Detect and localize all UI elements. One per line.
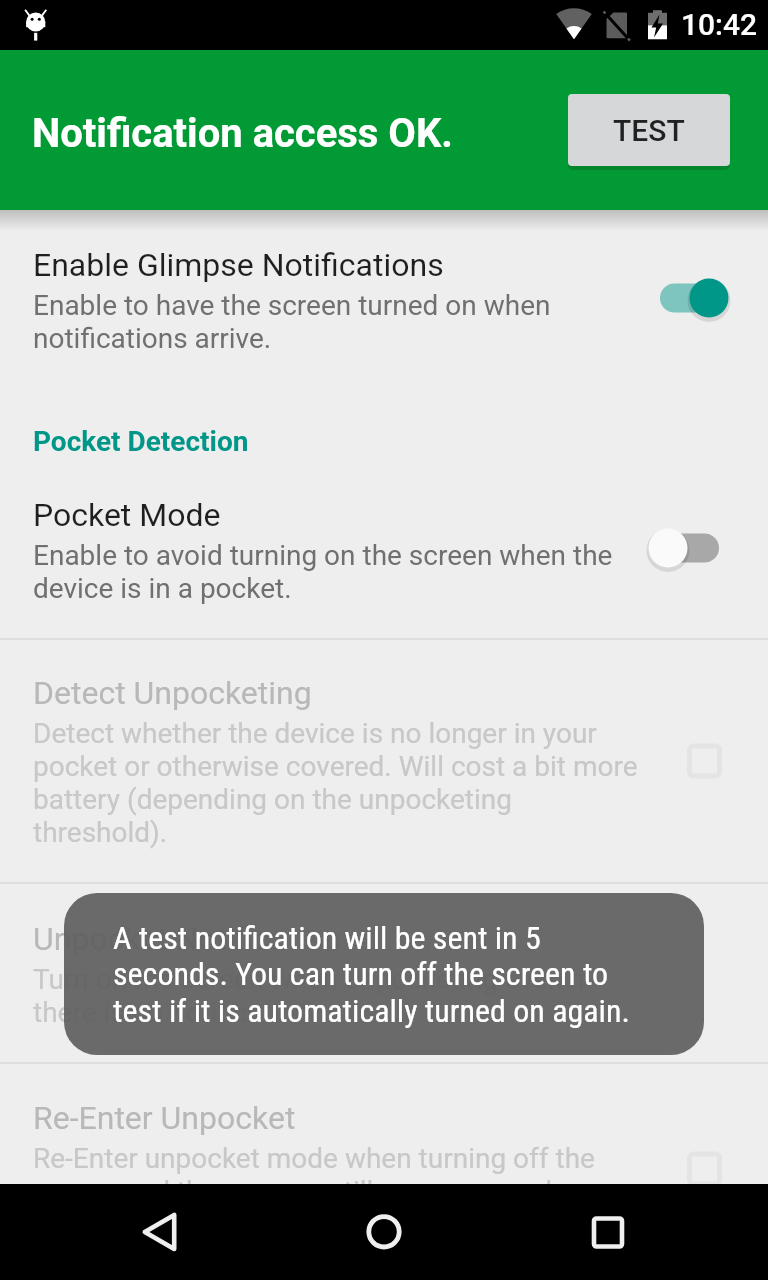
staticText: Notification access OK. (32, 110, 453, 157)
staticText: Detect Unpocketing (33, 674, 312, 712)
staticText: Re-Enter Unpocket (33, 1099, 296, 1137)
button[interactable]: Checkbox (668, 1124, 768, 1214)
staticText: Pocket Mode (33, 496, 221, 534)
button[interactable]: Enable Glimpse Notifications toggle (668, 250, 768, 340)
staticText: Re-Enter unpocket mode when turning off … (33, 1142, 644, 1241)
staticText: 10:42 (681, 7, 758, 42)
button[interactable]: Recent apps (552, 1184, 664, 1280)
button[interactable]: Enable Glimpse Notifications (0, 222, 768, 367)
staticText: Turn on the screen when unpocketing even… (33, 963, 644, 1029)
staticText: Enable to avoid turning on the screen wh… (33, 539, 644, 605)
staticText: Unpocket Notification (33, 920, 342, 958)
staticText: Enable to have the screen turned on when… (33, 289, 644, 355)
staticText: Pocket Detection (33, 425, 249, 458)
button[interactable]: Home (328, 1184, 440, 1280)
staticText: Enable Glimpse Notifications (33, 246, 444, 284)
staticText: TEST (613, 113, 685, 148)
button[interactable]: Pocket Mode (0, 462, 768, 638)
button[interactable]: Back (104, 1184, 216, 1280)
staticText: A test notification will be sent in 5 se… (113, 919, 633, 1030)
button[interactable]: Unpocket Notification (0, 884, 768, 1062)
button[interactable]: Re-Enter Unpocket (0, 1064, 768, 1274)
staticText: Detect whether the device is no longer i… (33, 717, 644, 849)
button[interactable]: Pocket Mode toggle (668, 505, 768, 595)
button[interactable]: Detect Unpocketing (0, 640, 768, 882)
button[interactable]: Checkbox (668, 928, 768, 1018)
button[interactable]: TEST (568, 94, 730, 166)
